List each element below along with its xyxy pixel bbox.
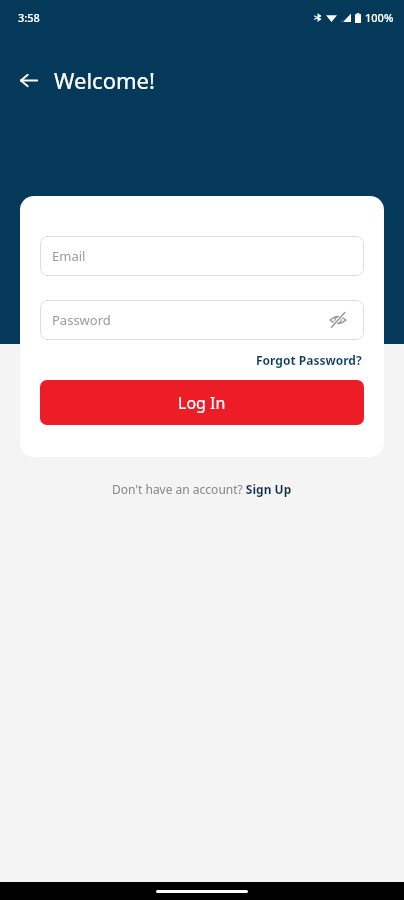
button[interactable]: Password (40, 300, 364, 340)
staticText: Log In (178, 392, 226, 414)
button[interactable]: Back (8, 60, 48, 100)
button[interactable]: Forgot Password? (254, 350, 364, 370)
button[interactable]: Show password (324, 306, 352, 334)
staticText: 3:58 (18, 10, 40, 25)
button[interactable]: Email (40, 236, 364, 276)
staticText: 100% (365, 10, 394, 25)
staticText: Welcome! (54, 65, 155, 95)
staticText: Password (52, 311, 111, 329)
button[interactable]: Don't have an account? Sign Up (109, 478, 295, 500)
staticText: Email (52, 247, 86, 265)
staticText: Forgot Password? (256, 352, 362, 368)
button[interactable]: Log In (40, 380, 364, 425)
staticText: Don't have an account? Sign Up (112, 481, 292, 497)
